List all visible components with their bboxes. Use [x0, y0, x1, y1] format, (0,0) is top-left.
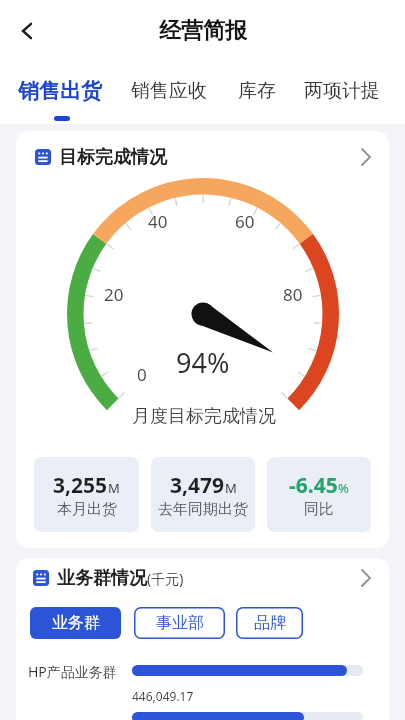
- staticText: 20: [104, 283, 124, 303]
- staticText: 销售应收: [131, 79, 207, 103]
- button[interactable]: 3,255: [34, 457, 139, 532]
- staticText: M: [225, 479, 237, 497]
- staticText: 销售出货: [18, 78, 102, 104]
- staticText: 本月出货: [57, 500, 117, 519]
- staticText: 两项计提: [304, 79, 380, 103]
- button[interactable]: 库存: [238, 75, 276, 107]
- staticText: 446,049.17: [132, 688, 194, 704]
- staticText: 库存: [238, 79, 276, 103]
- staticText: 60: [235, 210, 255, 230]
- staticText: -6.45: [289, 471, 338, 500]
- button[interactable]: 3,479: [151, 457, 255, 532]
- button[interactable]: 销售应收: [131, 75, 207, 107]
- staticText: %: [338, 479, 349, 497]
- staticText: 94%: [176, 344, 230, 378]
- staticText: 品牌: [254, 613, 286, 633]
- staticText: 业务群情况: [57, 567, 147, 590]
- button[interactable]: 销售出货: [18, 75, 102, 107]
- staticText: 3,479: [170, 471, 225, 500]
- button[interactable]: -6.45: [267, 457, 371, 532]
- staticText: 事业部: [156, 613, 204, 633]
- staticText: 80: [283, 283, 303, 303]
- staticText: (千元): [147, 569, 184, 588]
- staticText: 40: [148, 210, 168, 230]
- staticText: 经营简报: [159, 17, 247, 45]
- staticText: M: [108, 479, 120, 497]
- staticText: 0: [137, 363, 147, 383]
- staticText: 业务群: [52, 613, 100, 633]
- button[interactable]: 两项计提: [304, 75, 380, 107]
- staticText: 去年同期出货: [158, 500, 248, 519]
- staticText: 同比: [304, 500, 334, 519]
- button[interactable]: 业务群: [30, 607, 121, 639]
- staticText: 月度目标完成情况: [132, 405, 276, 428]
- staticText: 目标完成情况: [59, 146, 167, 169]
- staticText: 3,255: [53, 471, 108, 500]
- button[interactable]: 目标完成情况: [59, 145, 405, 169]
- button[interactable]: 业务群情况: [57, 566, 184, 590]
- staticText: HP产品业务群: [28, 662, 117, 681]
- button[interactable]: 事业部: [134, 607, 225, 639]
- button[interactable]: [0, 9, 44, 53]
- button[interactable]: 品牌: [236, 607, 303, 639]
